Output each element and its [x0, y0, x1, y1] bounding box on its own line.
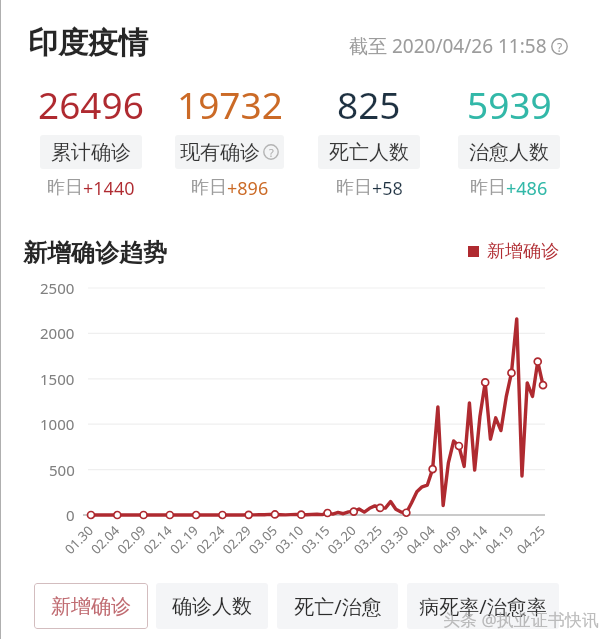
button[interactable]: 新增确诊 [34, 583, 148, 629]
staticText: 死亡人数 [329, 140, 409, 165]
staticText: 5939 [467, 79, 552, 129]
staticText: 治愈人数 [469, 140, 549, 165]
staticText: ? [557, 39, 563, 55]
button[interactable]: 确诊人数 [156, 583, 268, 629]
staticText: 昨日 [47, 176, 83, 199]
button[interactable]: 死亡/治愈 [277, 583, 398, 629]
staticText: 累计确诊 [51, 140, 131, 165]
button[interactable]: 病死率/治愈率 [407, 583, 559, 629]
staticText: +896 [227, 176, 269, 201]
staticText: 确诊人数 [172, 594, 252, 619]
staticText: 现有确诊 [180, 140, 260, 165]
staticText: 825 [337, 79, 401, 129]
staticText: +58 [372, 176, 403, 201]
staticText: 新增确诊 [487, 240, 559, 263]
staticText: ? [269, 145, 274, 160]
staticText: 昨日 [191, 176, 227, 199]
button[interactable]: 死亡人数 [318, 135, 420, 169]
button[interactable]: 现有确诊 [175, 135, 284, 169]
staticText: 19732 [177, 79, 283, 129]
staticText: 死亡/治愈 [294, 593, 382, 620]
button[interactable]: 累计确诊 [40, 135, 142, 169]
staticText: 截至 2020/04/26 11:58 [349, 33, 547, 59]
staticText: 头条 @执业证书快讯 [443, 608, 599, 631]
staticText: 昨日 [470, 176, 506, 199]
staticText: 昨日 [336, 176, 372, 199]
staticText: 印度疫情 [28, 24, 148, 62]
staticText: 病死率/治愈率 [419, 593, 547, 620]
staticText: 新增确诊 [51, 594, 131, 619]
staticText: 26496 [38, 79, 144, 129]
staticText: 新增确诊趋势 [23, 238, 167, 268]
staticText: +486 [506, 176, 548, 201]
button[interactable]: 治愈人数 [458, 135, 560, 169]
staticText: +1440 [83, 176, 135, 201]
